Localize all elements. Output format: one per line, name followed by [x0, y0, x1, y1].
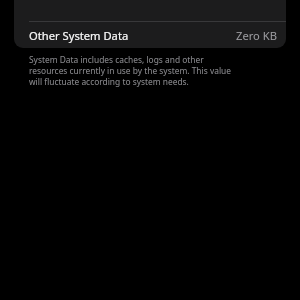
staticText: Other System Data [29, 28, 129, 43]
button[interactable]: Other System Data [14, 22, 286, 48]
staticText: Zero KB [236, 28, 277, 43]
staticText: will fluctuate according to system needs… [29, 76, 189, 87]
staticText: resources currently in use by the system… [29, 65, 231, 76]
staticText: System Data includes caches, logs and ot… [29, 54, 204, 65]
